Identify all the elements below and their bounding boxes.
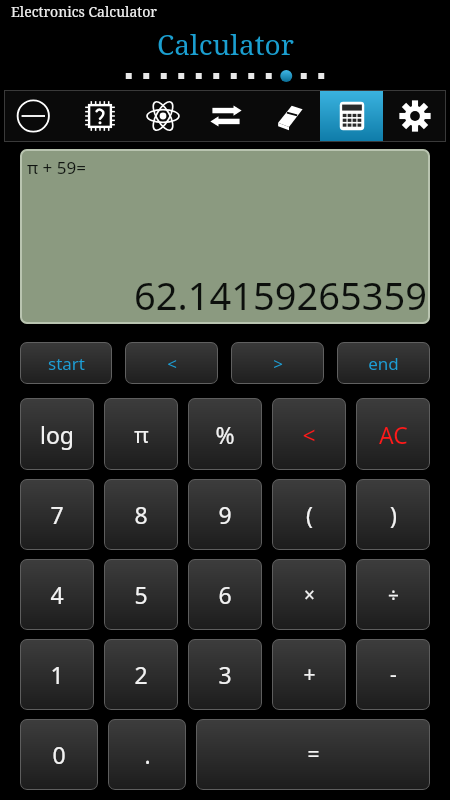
- button[interactable]: ×: [272, 559, 346, 630]
- staticText: 1: [50, 659, 64, 690]
- staticText: 4: [50, 579, 64, 610]
- staticText: end: [368, 352, 399, 375]
- button[interactable]: <: [272, 398, 346, 470]
- staticText: Calculator: [157, 25, 294, 63]
- button[interactable]: ÷: [356, 559, 430, 630]
- staticText: %: [215, 419, 235, 450]
- button[interactable]: ): [356, 479, 430, 550]
- button[interactable]: 6: [188, 559, 262, 630]
- staticText: 3: [218, 659, 232, 690]
- button[interactable]: Atom: [131, 90, 194, 142]
- button[interactable]: 0: [20, 719, 98, 790]
- button[interactable]: 3: [188, 639, 262, 710]
- button[interactable]: log: [20, 398, 94, 470]
- button[interactable]: end: [337, 342, 430, 384]
- staticText: π: [134, 419, 149, 449]
- staticText: <: [302, 419, 316, 450]
- staticText: 2: [134, 659, 148, 690]
- staticText: (: [306, 499, 313, 530]
- button[interactable]: AC DC converter: [4, 90, 68, 142]
- staticText: AC: [379, 419, 408, 450]
- button[interactable]: 4: [20, 559, 94, 630]
- staticText: 0: [52, 739, 66, 770]
- button[interactable]: Calculator: [320, 90, 383, 142]
- staticText: ÷: [388, 582, 399, 608]
- staticText: log: [40, 419, 74, 450]
- staticText: -: [390, 660, 397, 689]
- button[interactable]: Reference book: [257, 90, 320, 142]
- button[interactable]: π: [104, 398, 178, 470]
- button[interactable]: 1: [20, 639, 94, 710]
- staticText: ×: [304, 582, 315, 608]
- staticText: +: [303, 660, 316, 689]
- button[interactable]: start: [20, 342, 112, 384]
- staticText: <: [167, 352, 177, 375]
- button[interactable]: Settings: [383, 90, 446, 142]
- button[interactable]: 5: [104, 559, 178, 630]
- button[interactable]: Converter: [194, 90, 257, 142]
- staticText: 7: [50, 499, 64, 530]
- staticText: 5: [134, 579, 148, 610]
- staticText: =: [307, 740, 320, 769]
- staticText: .: [144, 739, 151, 770]
- staticText: ): [390, 499, 397, 530]
- staticText: 9: [218, 499, 232, 530]
- staticText: 8: [134, 499, 148, 530]
- button[interactable]: 9: [188, 479, 262, 550]
- button[interactable]: (: [272, 479, 346, 550]
- button[interactable]: -: [356, 639, 430, 710]
- button[interactable]: 7: [20, 479, 94, 550]
- button[interactable]: 8: [104, 479, 178, 550]
- staticText: 6: [218, 579, 232, 610]
- button[interactable]: >: [231, 342, 324, 384]
- button[interactable]: Components: [68, 90, 131, 142]
- button[interactable]: %: [188, 398, 262, 470]
- staticText: >: [273, 352, 283, 375]
- button[interactable]: 2: [104, 639, 178, 710]
- staticText: π + 59=: [27, 156, 86, 179]
- staticText: 62.14159265359: [134, 269, 427, 321]
- button[interactable]: +: [272, 639, 346, 710]
- staticText: Electronics Calculator: [11, 2, 157, 21]
- staticText: start: [48, 352, 85, 375]
- button[interactable]: .: [108, 719, 186, 790]
- button[interactable]: =: [196, 719, 430, 790]
- button[interactable]: <: [125, 342, 218, 384]
- button[interactable]: AC: [356, 398, 430, 470]
